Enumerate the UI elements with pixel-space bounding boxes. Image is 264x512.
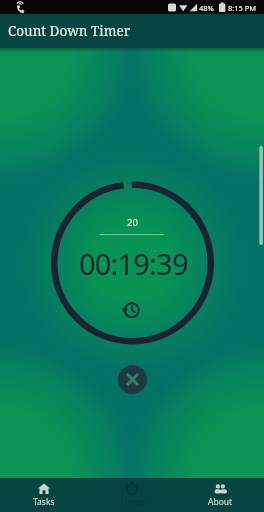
staticText: Timer bbox=[119, 495, 146, 508]
staticText: 8:15 PM bbox=[228, 3, 257, 13]
staticText: About bbox=[208, 496, 233, 508]
staticText: Count Down Timer bbox=[8, 22, 131, 40]
staticText: 48% bbox=[199, 3, 214, 13]
button[interactable] bbox=[118, 365, 147, 394]
staticText: Tasks bbox=[33, 496, 55, 508]
staticText: 20 bbox=[127, 216, 138, 229]
button[interactable]: Tasks bbox=[0, 478, 88, 512]
staticText: 00:19:39 bbox=[79, 244, 188, 283]
button[interactable] bbox=[121, 300, 142, 321]
button[interactable]: About bbox=[176, 478, 264, 512]
